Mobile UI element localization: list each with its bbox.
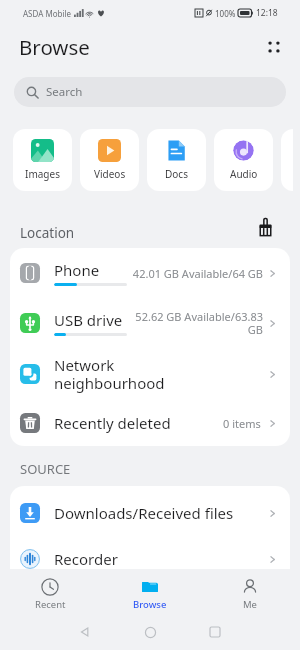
button[interactable]: Images <box>13 129 72 191</box>
staticText: ASDA Mobile <box>23 8 72 19</box>
staticText: 42.01 GB Available/64 GB <box>129 266 263 281</box>
button[interactable]: More options <box>257 30 291 64</box>
staticText: Images <box>25 167 60 181</box>
button[interactable]: Documents <box>10 582 290 606</box>
staticText: 100% <box>215 8 236 19</box>
button[interactable]: Cleanup <box>252 214 278 240</box>
staticText: 52.62 GB Available/63.83 GB <box>129 309 263 337</box>
button[interactable]: APK <box>281 129 293 191</box>
button[interactable]: Recently deleted <box>10 400 290 446</box>
staticText: Downloads/Received files <box>54 503 234 523</box>
button[interactable]: Recorder <box>10 536 290 582</box>
staticText: 0 items <box>223 416 261 431</box>
staticText: SOURCE <box>20 460 71 478</box>
button[interactable]: Search <box>14 77 286 107</box>
staticText: Search <box>46 84 83 100</box>
button[interactable]: Recent <box>0 569 100 614</box>
staticText: Documents <box>54 584 135 604</box>
button[interactable]: USB drive <box>10 298 290 348</box>
button[interactable]: Videos <box>80 129 139 191</box>
staticText: Recent <box>35 598 66 611</box>
staticText: Browse <box>133 598 167 611</box>
staticText: Network neighbourhood <box>54 355 165 394</box>
button[interactable]: Back <box>75 622 95 642</box>
staticText: Recently deleted <box>54 413 171 433</box>
staticText: Browse <box>19 33 90 61</box>
staticText: Docs <box>165 167 188 181</box>
button[interactable]: Network neighbourhood <box>10 348 290 400</box>
button[interactable]: Recents <box>205 622 225 642</box>
staticText: Recorder <box>54 549 118 569</box>
staticText: Location <box>20 224 75 242</box>
staticText: 12:18 <box>256 7 278 19</box>
button[interactable]: Audio <box>214 129 273 191</box>
button[interactable]: Home <box>140 622 160 642</box>
button[interactable]: Browse <box>100 569 200 614</box>
button[interactable]: Phone <box>10 248 290 298</box>
button[interactable]: Downloads/Received files <box>10 490 290 536</box>
button[interactable]: Docs <box>147 129 206 191</box>
staticText: Me <box>243 598 257 611</box>
staticText: Videos <box>94 167 126 181</box>
staticText: USB drive <box>54 310 123 330</box>
button[interactable]: Me <box>200 569 300 614</box>
staticText: Phone <box>54 260 100 280</box>
staticText: Audio <box>230 167 258 181</box>
